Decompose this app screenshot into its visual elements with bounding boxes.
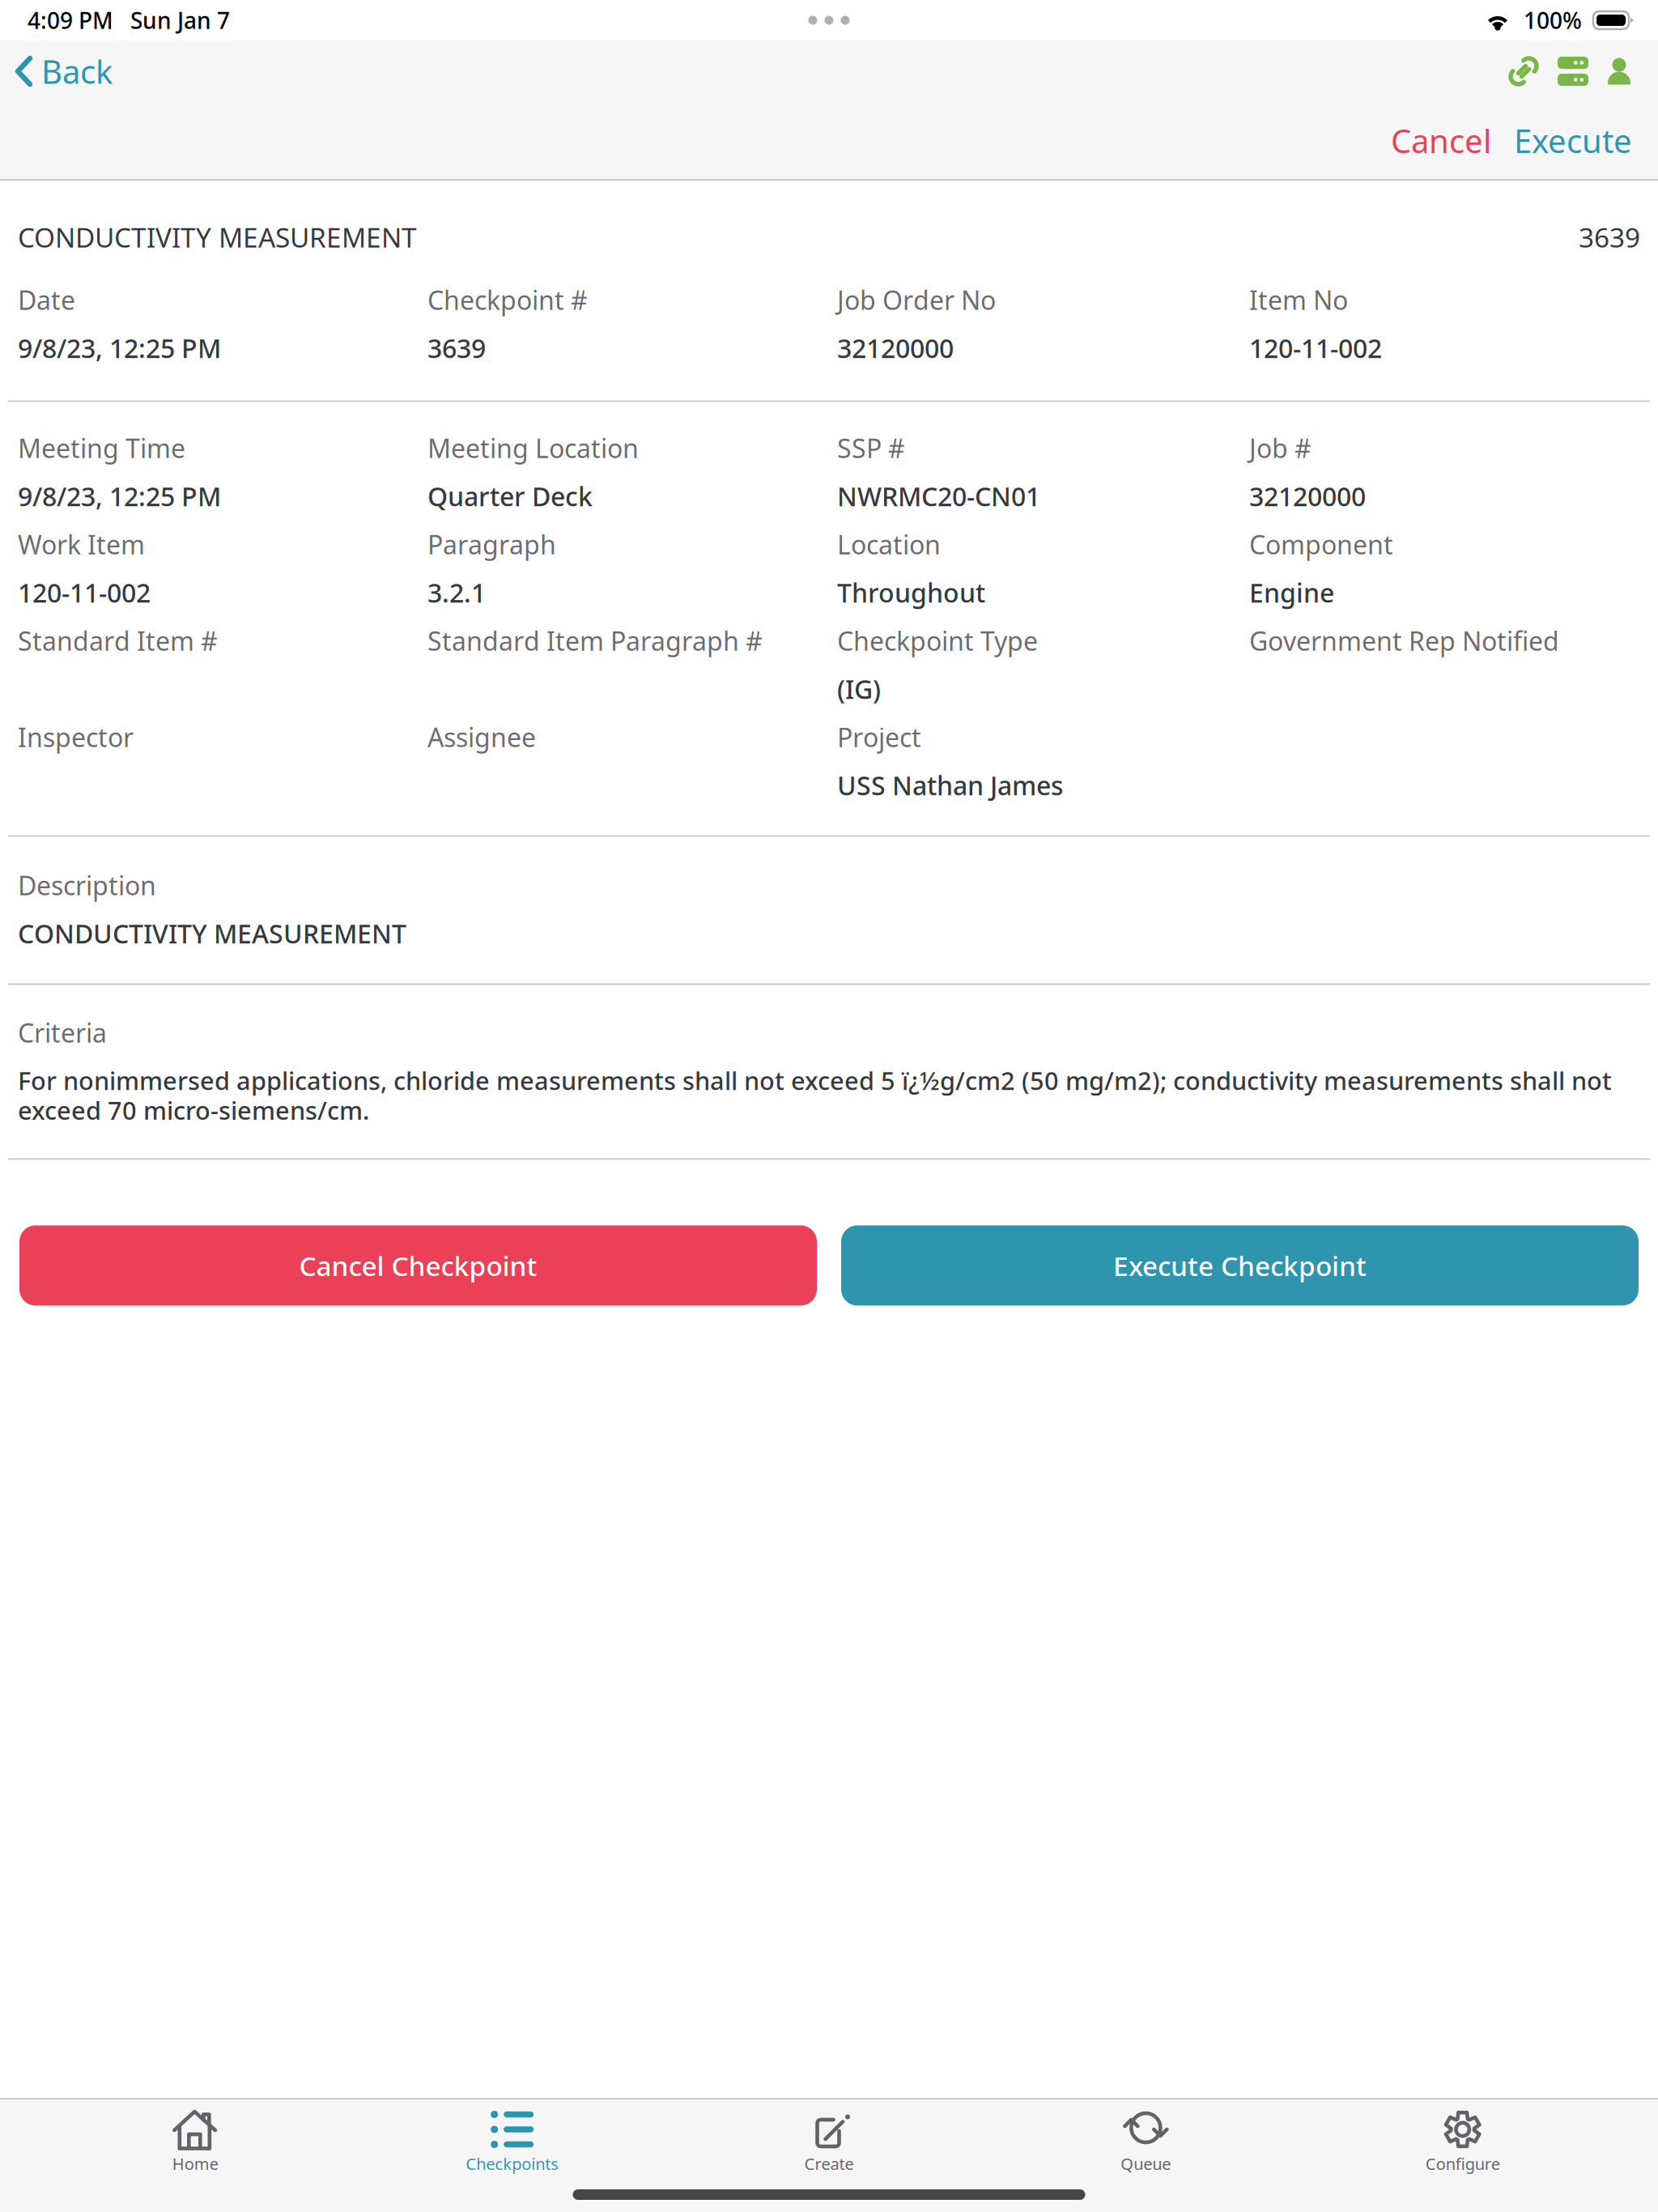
staticText: 120-11-002 <box>18 575 151 610</box>
button[interactable]: Home <box>74 2099 317 2212</box>
staticText: Cancel Checkpoint <box>299 1248 537 1283</box>
staticText: Project <box>837 720 921 754</box>
staticText: 120-11-002 <box>1249 331 1382 365</box>
staticText: Queue <box>1121 2153 1171 2174</box>
staticText: Work Item <box>18 527 145 562</box>
staticText: Location <box>837 527 941 562</box>
staticText: Job # <box>1249 431 1312 465</box>
button[interactable]: Execute Checkpoint <box>841 1225 1639 1306</box>
staticText: Checkpoint # <box>427 283 588 317</box>
staticText: Execute Checkpoint <box>1113 1248 1367 1283</box>
staticText: Description <box>18 868 156 902</box>
staticText: Criteria <box>18 1015 107 1050</box>
staticText: Quarter Deck <box>427 479 593 513</box>
staticText: SSP # <box>837 431 905 465</box>
button[interactable]: Back <box>0 40 125 102</box>
button[interactable]: Create <box>708 2099 950 2212</box>
staticText: Create <box>804 2153 854 2174</box>
staticText: Assignee <box>427 720 536 754</box>
button[interactable]: Configure <box>1341 2099 1584 2212</box>
staticText: Checkpoint Type <box>837 623 1038 658</box>
button[interactable]: Cancel Checkpoint <box>19 1225 817 1306</box>
staticText: Government Rep Notified <box>1249 623 1559 658</box>
staticText: CONDUCTIVITY MEASUREMENT <box>18 219 417 255</box>
button[interactable]: Link <box>1499 40 1549 102</box>
staticText: Inspector <box>18 720 134 754</box>
button[interactable]: Queue <box>1024 2099 1267 2212</box>
staticText: CONDUCTIVITY MEASUREMENT <box>18 916 406 951</box>
staticText: Engine <box>1249 575 1334 610</box>
staticText: 3639 <box>427 331 486 365</box>
staticText: NWRMC20-CN01 <box>837 479 1040 513</box>
staticText: 3.2.1 <box>427 575 486 610</box>
staticText: Throughout <box>837 575 985 610</box>
staticText: Date <box>18 283 75 317</box>
staticText: Home <box>172 2153 218 2174</box>
staticText: USS Nathan James <box>837 768 1064 802</box>
staticText: 100% <box>1512 5 1593 35</box>
staticText: 9/8/23, 12:25 PM <box>18 331 221 365</box>
staticText: Meeting Location <box>427 431 639 465</box>
button[interactable]: Checkpoints <box>391 2099 634 2212</box>
button[interactable]: Server <box>1549 40 1597 102</box>
staticText: 9/8/23, 12:25 PM <box>18 479 221 513</box>
staticText: (IG) <box>837 672 881 706</box>
staticText: Meeting Time <box>18 431 185 465</box>
staticText: Back <box>41 50 113 93</box>
staticText: Paragraph <box>427 527 556 562</box>
staticText: 32120000 <box>837 331 954 365</box>
button[interactable]: Execute <box>1503 111 1643 170</box>
button[interactable]: Cancel <box>1380 111 1503 170</box>
staticText: Execute <box>1514 119 1632 162</box>
staticText: 32120000 <box>1249 479 1366 513</box>
staticText: Checkpoints <box>466 2153 559 2174</box>
staticText: Standard Item # <box>18 623 218 658</box>
staticText: Component <box>1249 527 1393 562</box>
button[interactable]: Account <box>1597 40 1641 102</box>
staticText: Item No <box>1249 283 1348 317</box>
staticText: Cancel <box>1391 119 1491 162</box>
staticText: For nonimmersed applications, chloride m… <box>18 1064 1612 1127</box>
staticText: 4:09 PM <box>28 5 113 35</box>
staticText: Configure <box>1425 2153 1500 2174</box>
staticText: 3639 <box>1579 219 1640 255</box>
staticText: Sun Jan 7 <box>113 5 230 35</box>
staticText: Standard Item Paragraph # <box>427 623 763 658</box>
staticText: Job Order No <box>837 283 996 317</box>
